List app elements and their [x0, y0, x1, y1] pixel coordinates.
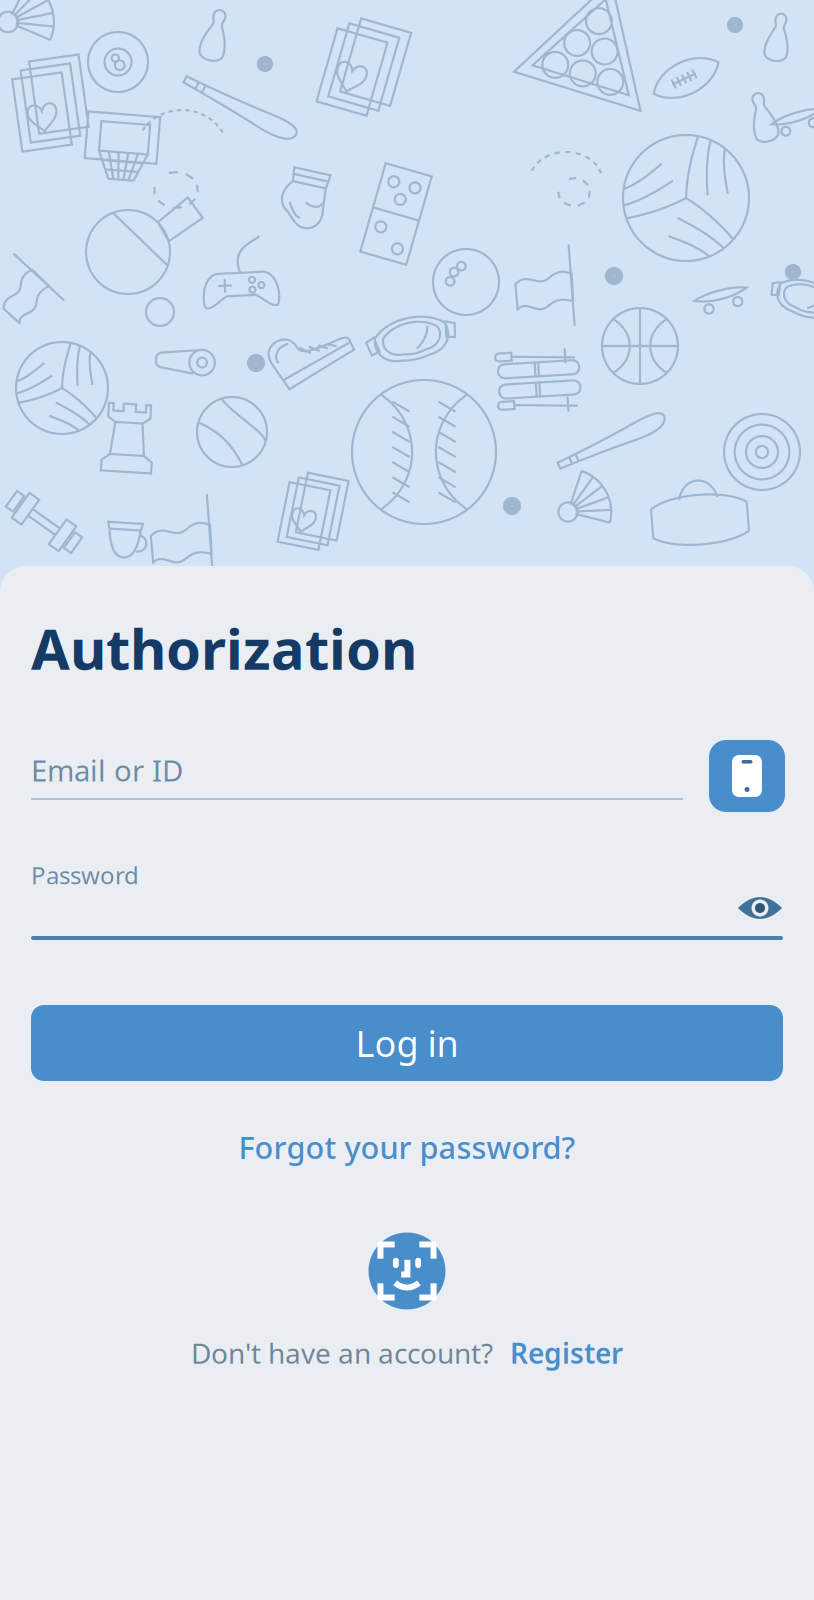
- staticText: Log in: [355, 1019, 458, 1067]
- button[interactable]: Sign in with device: [709, 740, 785, 812]
- button[interactable]: Register: [510, 1334, 623, 1372]
- staticText: Don't have an account?: [191, 1334, 493, 1372]
- button[interactable]: Log in: [31, 1005, 783, 1081]
- staticText: Register: [510, 1334, 623, 1372]
- button[interactable]: Show password: [728, 886, 792, 930]
- staticText: Password: [31, 859, 139, 891]
- staticText: Forgot your password?: [238, 1127, 575, 1167]
- staticText: Authorization: [31, 611, 417, 685]
- button[interactable]: Forgot your password?: [31, 1122, 783, 1172]
- staticText: Email or ID: [31, 750, 183, 789]
- button[interactable]: Sign in with Face ID: [368, 1232, 445, 1309]
